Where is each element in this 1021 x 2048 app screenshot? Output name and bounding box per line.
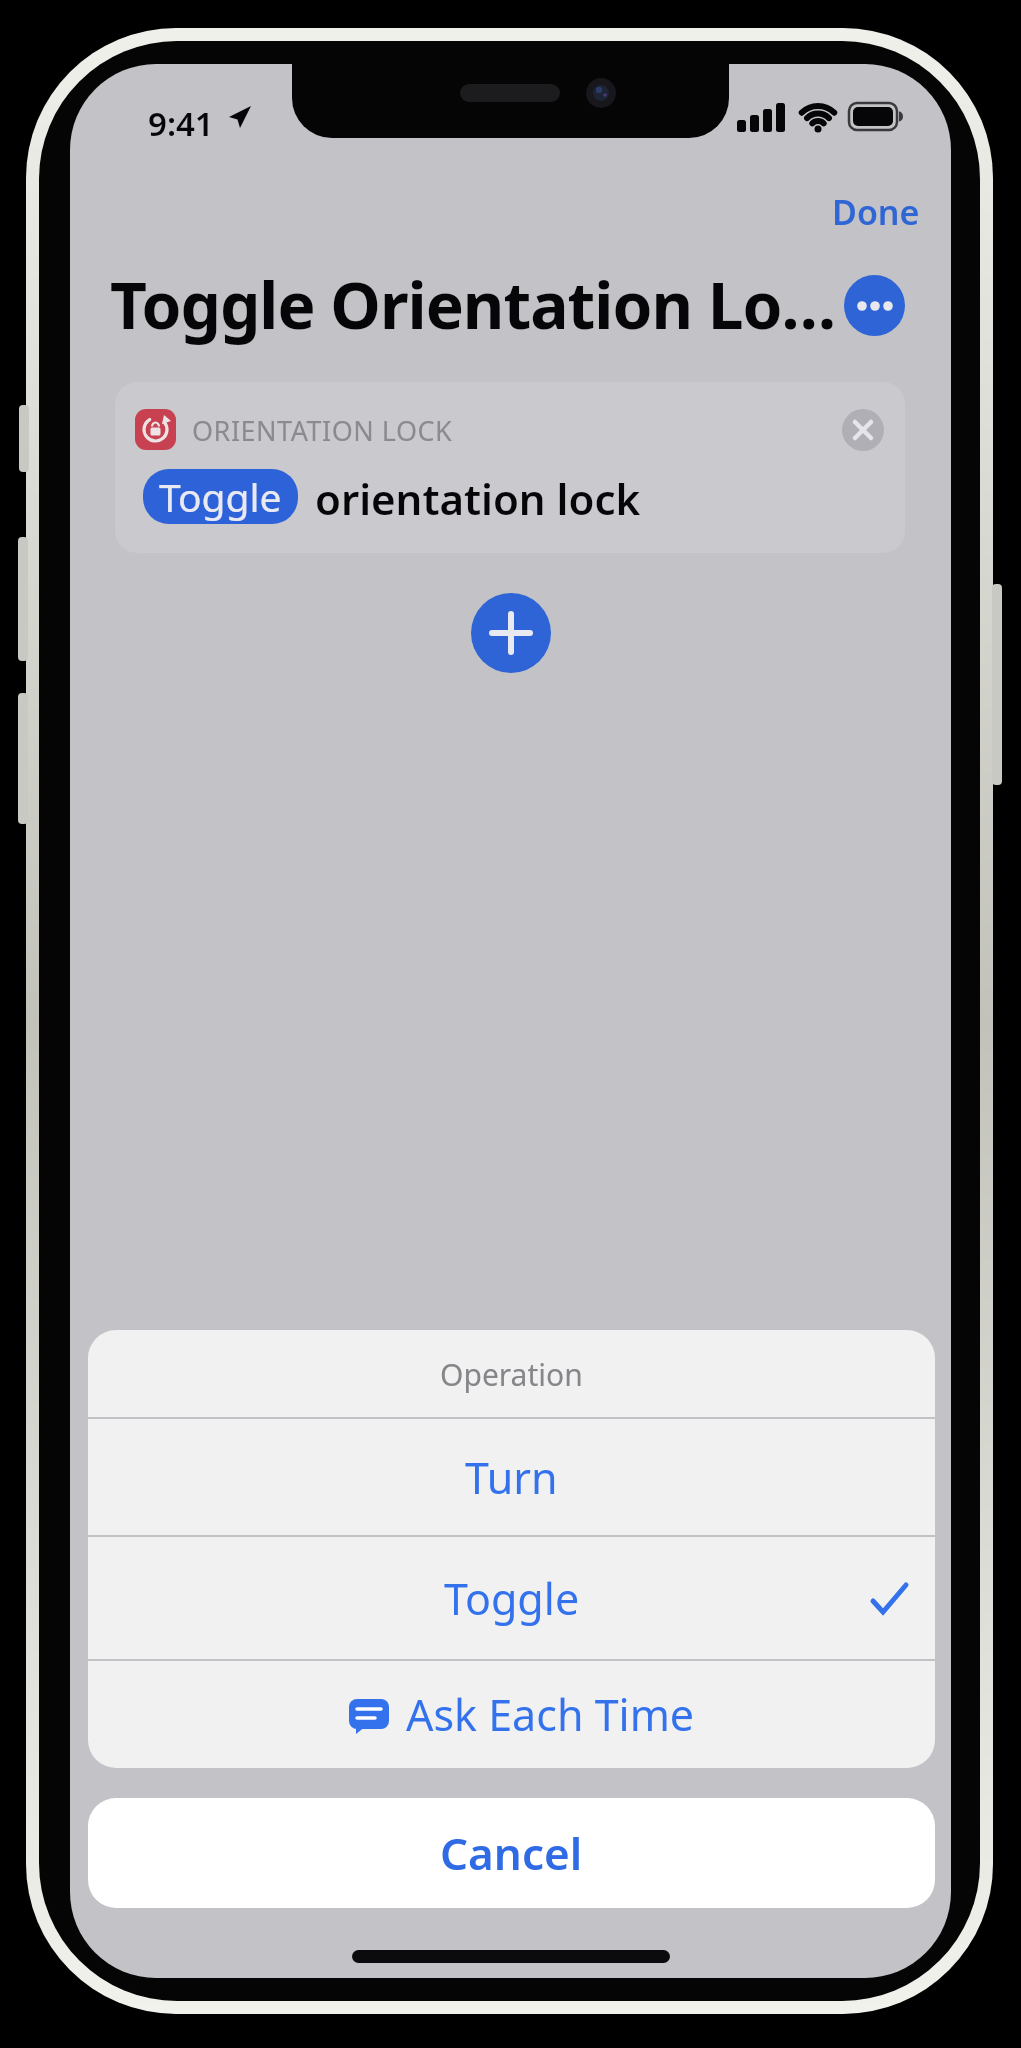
button[interactable] <box>471 593 551 673</box>
button[interactable] <box>842 409 884 451</box>
staticText: orientation lock <box>315 470 641 527</box>
button[interactable]: Cancel <box>88 1798 935 1908</box>
staticText: Toggle <box>444 1569 580 1628</box>
staticText: Done <box>832 189 920 235</box>
button[interactable]: Turn <box>88 1419 935 1536</box>
staticText: Toggle <box>159 470 282 523</box>
staticText: ORIENTATION LOCK <box>192 412 453 449</box>
staticText: Toggle Orientation Lo… <box>110 261 855 345</box>
staticText: Ask Each Time <box>406 1685 695 1744</box>
staticText: Cancel <box>440 1823 583 1883</box>
staticText: 9:41 <box>148 101 214 146</box>
staticText: Turn <box>465 1448 558 1507</box>
button[interactable] <box>844 275 905 336</box>
button[interactable]: Toggle <box>88 1537 935 1659</box>
staticText: Operation <box>440 1354 583 1395</box>
button[interactable]: Toggle <box>143 469 298 524</box>
button[interactable]: Ask Each Time <box>88 1661 935 1768</box>
button[interactable]: Done <box>810 188 920 236</box>
